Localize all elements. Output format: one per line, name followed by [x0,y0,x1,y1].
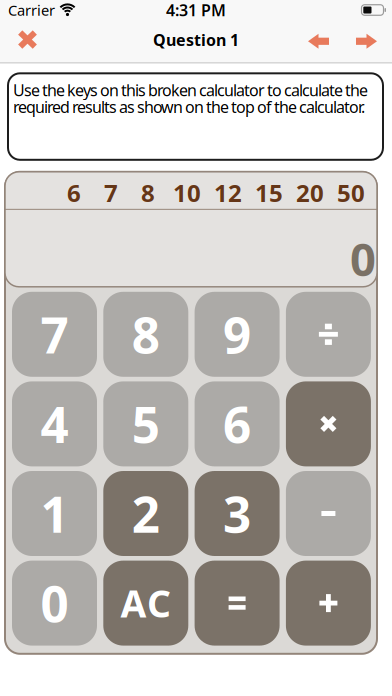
staticText: 9 [223,301,251,367]
button[interactable]: 6 [195,381,280,466]
staticText: 0 [350,229,376,289]
staticText: 3 [223,481,251,546]
staticText: 6 [67,177,81,209]
staticText: 4:31 PM [166,0,226,21]
staticText: 8 [132,301,160,367]
staticText: 12 [214,177,242,209]
staticText: Question 1 [153,29,239,50]
staticText: Carrier [8,0,55,20]
staticText: 1 [40,481,68,546]
button[interactable]: 3 [195,471,280,556]
button[interactable] [286,471,371,556]
button[interactable]: AC [103,561,188,646]
button[interactable] [195,561,280,646]
staticText: 50 [337,177,365,209]
button[interactable]: 0 [12,561,97,646]
staticText: 7 [104,177,118,209]
staticText: 20 [296,177,324,209]
button[interactable]: 1 [12,471,97,556]
staticText: 2 [132,481,160,546]
staticText: AC [120,578,171,628]
button[interactable] [0,32,37,50]
button[interactable]: 5 [103,381,188,466]
button[interactable] [286,292,371,377]
button[interactable]: 2 [103,471,188,556]
button[interactable]: 7 [12,292,97,377]
button[interactable]: 9 [195,292,280,377]
button[interactable]: 8 [103,292,188,377]
button[interactable] [356,34,392,49]
staticText: Use the keys on this broken calculator t… [13,79,368,117]
staticText: 8 [141,177,155,209]
staticText: 6 [223,391,251,457]
button[interactable] [308,34,329,49]
staticText: 4 [40,391,68,457]
staticText: 7 [40,301,68,367]
staticText: 15 [255,177,283,209]
button[interactable] [286,381,371,466]
staticText: 10 [173,177,201,209]
staticText: 0 [40,570,68,636]
staticText: 5 [132,391,160,457]
button[interactable] [286,561,371,646]
button[interactable]: 4 [12,381,97,466]
